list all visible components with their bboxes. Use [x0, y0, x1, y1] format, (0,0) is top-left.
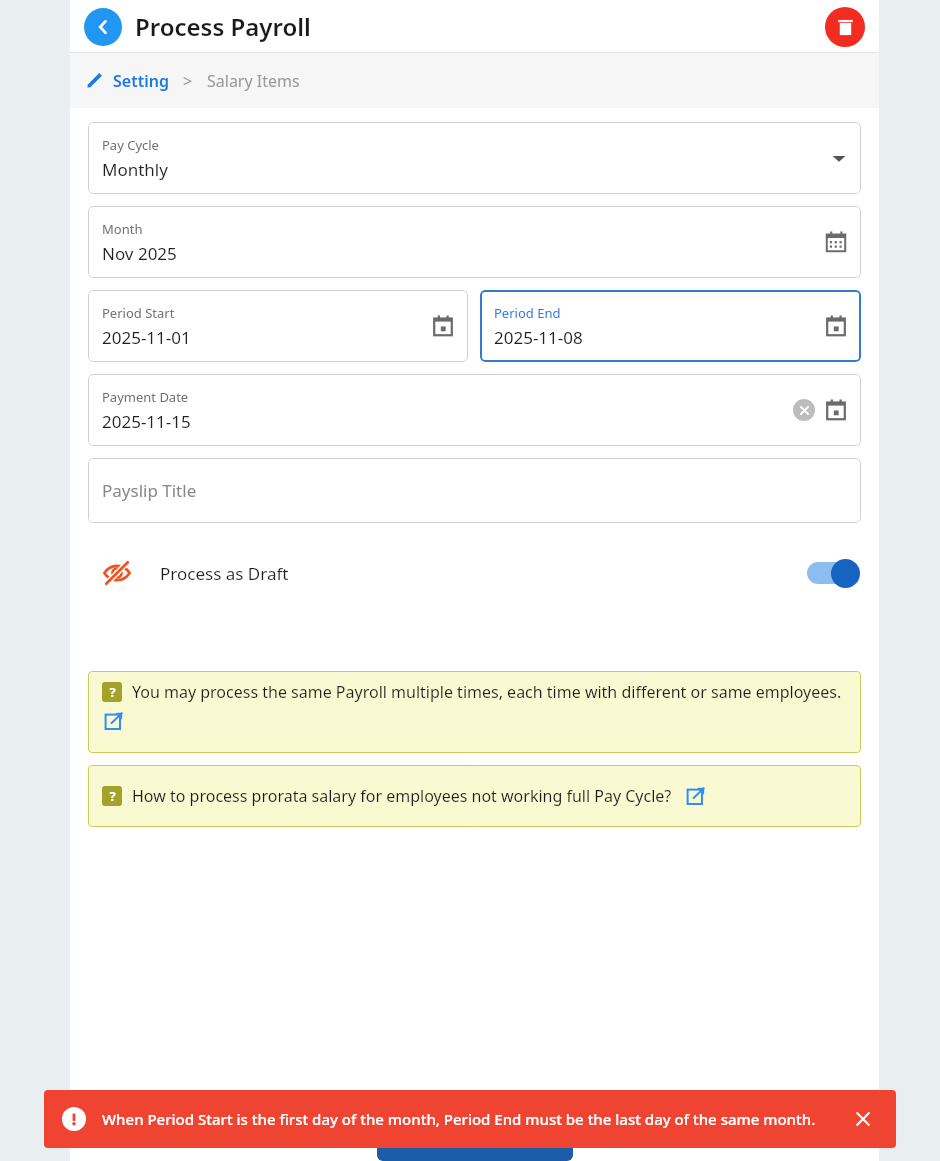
- staticText: Process as Draft: [160, 562, 289, 585]
- button[interactable]: Back: [84, 8, 122, 46]
- button[interactable]: [377, 1139, 573, 1161]
- staticText: Pay Cycle: [102, 136, 159, 154]
- staticText: Salary Items: [207, 70, 300, 92]
- other: Draft: [102, 558, 132, 588]
- staticText: >: [183, 70, 193, 92]
- staticText: Process Payroll: [135, 10, 311, 43]
- staticText: 2025-11-01: [102, 326, 191, 349]
- button[interactable]: Open link: [684, 784, 708, 808]
- other: Open dropdown: [831, 150, 847, 166]
- staticText: Payment Date: [102, 388, 189, 406]
- staticText: ?: [109, 787, 116, 805]
- staticText: 2025-11-15: [102, 410, 191, 433]
- staticText: 2025-11-08: [494, 326, 583, 349]
- other: Pick date: [825, 399, 847, 421]
- other: Pick date: [825, 315, 847, 337]
- staticText: Month: [102, 220, 143, 238]
- button[interactable]: Month: [88, 206, 861, 278]
- button[interactable]: Draft: [88, 549, 861, 597]
- staticText: Nov 2025: [102, 242, 177, 265]
- button[interactable]: Payslip Title: [88, 458, 861, 523]
- staticText: You may process the same Payroll multipl…: [132, 681, 842, 703]
- staticText: How to process prorata salary for employ…: [132, 785, 672, 807]
- button[interactable]: Period End: [480, 290, 861, 362]
- button[interactable]: ?: [88, 765, 861, 827]
- button[interactable]: Pay Cycle: [88, 122, 861, 194]
- other: Pick date: [432, 315, 454, 337]
- button[interactable]: Delete: [825, 7, 865, 47]
- staticText: Payslip Title: [102, 479, 197, 502]
- staticText: ?: [109, 683, 116, 701]
- button[interactable]: Dismiss: [848, 1104, 878, 1134]
- button[interactable]: Process as Draft toggle: [807, 558, 861, 588]
- other: Edit: [86, 72, 103, 89]
- staticText: When Period Start is the first day of th…: [102, 1109, 816, 1129]
- button[interactable]: Period Start: [88, 290, 468, 362]
- button[interactable]: Clear: [793, 399, 815, 421]
- button[interactable]: ?: [88, 671, 861, 753]
- staticText: Setting: [113, 70, 169, 92]
- button[interactable]: Setting: [113, 70, 169, 92]
- staticText: Period End: [494, 304, 561, 322]
- button[interactable]: Open link: [102, 709, 126, 733]
- other: Pick month: [825, 231, 847, 253]
- staticText: Period Start: [102, 304, 175, 322]
- button[interactable]: Payment Date: [88, 374, 861, 446]
- staticText: Monthly: [102, 158, 168, 181]
